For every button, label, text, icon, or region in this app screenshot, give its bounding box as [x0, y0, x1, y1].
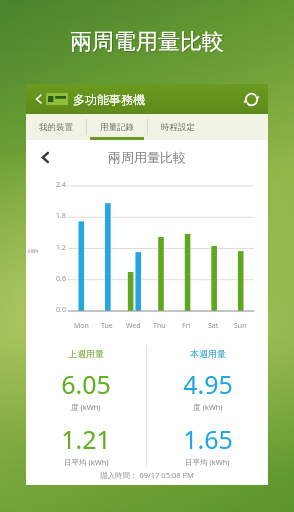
button[interactable]: 時程設定: [148, 114, 208, 140]
staticText: 1.65: [183, 422, 233, 456]
staticText: 1.8: [56, 211, 66, 221]
staticText: 0.0: [56, 305, 66, 315]
staticText: 用量記錄: [100, 122, 134, 133]
staticText: 時程設定: [161, 122, 195, 133]
staticText: 0.6: [56, 274, 66, 284]
staticText: Fri: [182, 321, 191, 331]
staticText: 兩周電用量比較: [70, 28, 224, 56]
staticText: 度 (kWh): [71, 402, 101, 412]
staticText: 1.2: [56, 243, 66, 253]
staticText: Mon: [74, 321, 89, 331]
button[interactable]: 我的裝置: [26, 114, 86, 140]
staticText: Sat: [208, 321, 219, 331]
staticText: 日平均 (kWh): [64, 457, 109, 467]
button[interactable]: Refresh: [240, 88, 262, 110]
staticText: 上週用量: [68, 348, 104, 359]
staticText: 度 (kWh): [193, 402, 223, 412]
staticText: 我的裝置: [39, 122, 73, 133]
staticText: 日平均 (kWh): [185, 457, 230, 467]
staticText: 擷入時間： 09/17 05:08 PM: [100, 470, 194, 480]
staticText: 多功能事務機: [73, 92, 145, 107]
staticText: Thu: [153, 321, 166, 331]
button[interactable]: Back: [32, 92, 46, 106]
button[interactable]: 本週用量: [147, 343, 268, 469]
staticText: Sun: [234, 321, 247, 331]
staticText: 本週用量: [190, 348, 226, 359]
staticText: 6.05: [61, 367, 111, 401]
button[interactable]: Logo: [46, 93, 68, 105]
staticText: 兩周電用量比較: [71, 29, 225, 57]
staticText: kWh: [28, 248, 39, 255]
staticText: Tue: [101, 321, 113, 331]
button[interactable]: 上週用量: [26, 343, 146, 469]
staticText: 2.4: [56, 180, 66, 190]
button[interactable]: 用量記錄: [87, 114, 147, 140]
staticText: Wed: [126, 321, 141, 331]
staticText: 4.95: [183, 367, 233, 401]
button[interactable]: Back: [34, 146, 56, 168]
staticText: 兩周用量比較: [108, 149, 186, 165]
staticText: 1.21: [61, 422, 111, 456]
